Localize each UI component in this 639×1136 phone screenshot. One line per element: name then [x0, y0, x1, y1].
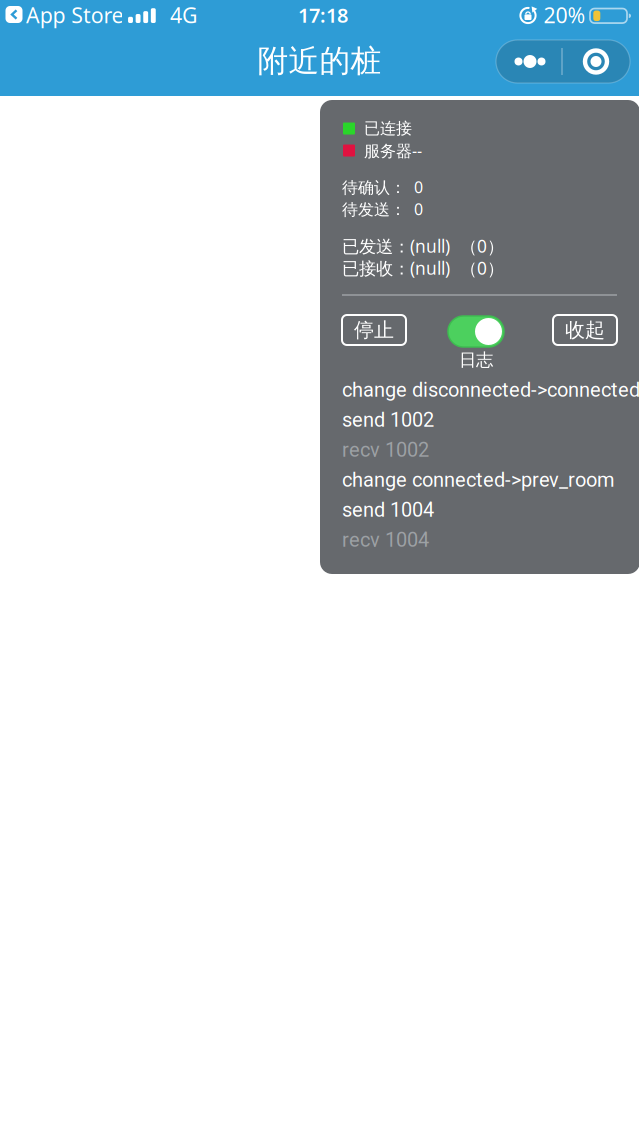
staticText: 已发送：(null) （0）	[342, 234, 504, 257]
staticText: send 1002	[342, 408, 434, 432]
staticText: 附近的桩	[257, 42, 381, 80]
staticText: 已接收：(null) （0）	[342, 256, 504, 279]
staticText: 4G	[170, 1, 198, 29]
staticText: send 1004	[342, 498, 434, 522]
button[interactable]: 日志	[448, 316, 504, 347]
staticText: change connected->prev_room	[342, 468, 615, 492]
button[interactable]: More	[496, 40, 560, 83]
staticText: 待确认： 0	[342, 176, 423, 198]
staticText: 停止	[354, 318, 394, 342]
staticText: 日志	[459, 349, 493, 371]
staticText: 17:18	[298, 2, 348, 28]
button[interactable]: 停止	[342, 315, 406, 345]
staticText: 已连接	[364, 119, 412, 138]
button[interactable]: Close	[564, 40, 628, 83]
staticText: 20%	[543, 1, 585, 29]
staticText: recv 1004	[342, 528, 429, 552]
button[interactable]: Back to App Store	[6, 0, 166, 30]
staticText: 收起	[565, 318, 605, 342]
button[interactable]: 收起	[553, 315, 617, 345]
staticText: recv 1002	[342, 438, 429, 462]
staticText: App Store	[26, 1, 123, 29]
staticText: change disconnected->connected	[342, 378, 639, 402]
staticText: 待发送： 0	[342, 198, 423, 220]
staticText: 服务器--	[364, 140, 422, 161]
